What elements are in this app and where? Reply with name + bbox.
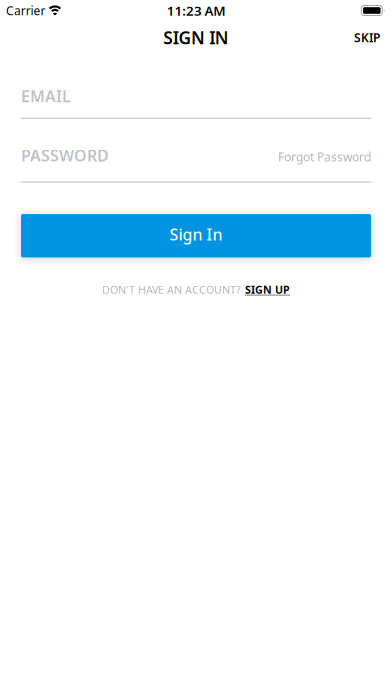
staticText: SIGN IN <box>163 26 229 49</box>
staticText: SKIP <box>354 29 380 45</box>
button[interactable]: PASSWORD <box>21 145 371 182</box>
staticText: Sign In <box>169 224 222 245</box>
staticText: Forgot Password <box>278 149 371 165</box>
button[interactable]: Sign In <box>21 214 371 257</box>
button[interactable]: EMAIL <box>21 85 371 119</box>
staticText: SIGN UP <box>245 282 290 297</box>
staticText: DON'T HAVE AN ACCOUNT? <box>102 282 241 297</box>
button[interactable]: Forgot Password <box>278 149 371 165</box>
staticText: PASSWORD <box>21 145 109 166</box>
staticText: 11:23 AM <box>167 2 225 19</box>
staticText: EMAIL <box>21 85 71 107</box>
staticText: Carrier <box>6 2 45 18</box>
button[interactable]: SKIP <box>354 29 380 45</box>
button[interactable]: SIGN UP <box>245 282 290 297</box>
